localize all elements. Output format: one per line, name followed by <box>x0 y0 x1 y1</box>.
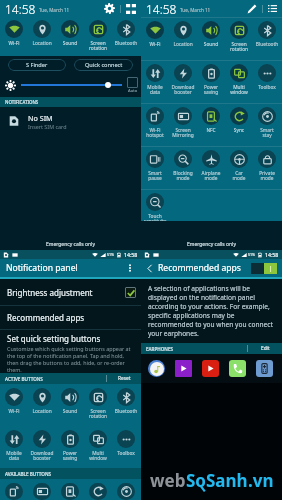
button[interactable]: Smart pause <box>141 147 169 189</box>
staticText: Auto <box>128 88 138 94</box>
staticText: 14:58 <box>146 1 177 17</box>
staticText: Screen rotation <box>84 408 112 419</box>
button[interactable]: Mobile data <box>0 426 28 468</box>
button[interactable]: Enable recommended apps <box>251 263 277 274</box>
button[interactable]: Video player <box>175 360 192 377</box>
staticText: NOTIFICATIONS <box>5 99 39 105</box>
button[interactable]: Multi window <box>225 61 253 103</box>
button[interactable] <box>28 479 56 500</box>
button[interactable]: Reset <box>107 373 141 384</box>
staticText: 51% <box>107 252 115 257</box>
button[interactable]: No SIM <box>0 107 141 135</box>
staticText: 14:58 <box>124 251 138 258</box>
button[interactable]: Power saving <box>197 61 225 103</box>
button[interactable]: Location <box>169 18 197 60</box>
staticText: 51% <box>248 252 256 257</box>
staticText: ACTIVE BUTTONS <box>5 376 43 382</box>
staticText: Download booster <box>28 450 56 461</box>
button[interactable]: YouTube <box>202 360 219 377</box>
button[interactable]: Download booster <box>169 61 197 103</box>
staticText: Multi window <box>225 84 253 95</box>
staticText: Sound <box>56 408 84 415</box>
button[interactable]: Remote <box>256 360 273 377</box>
button[interactable]: Car mode <box>225 147 253 189</box>
button[interactable]: Set quick setting buttons <box>0 330 141 373</box>
button[interactable]: Location <box>28 17 56 56</box>
staticText: Notification panel <box>6 262 78 274</box>
button[interactable]: Bluetooth <box>253 18 281 60</box>
button[interactable]: Toolbox <box>112 426 140 468</box>
staticText: web <box>150 469 186 492</box>
button[interactable]: Edit quick settings <box>247 4 257 14</box>
button[interactable]: Phone <box>229 360 246 377</box>
button[interactable]: More options <box>125 263 135 273</box>
staticText: Quick connect <box>85 61 123 69</box>
staticText: Blocking mode <box>169 170 197 181</box>
staticText: Location <box>28 40 56 47</box>
button[interactable] <box>84 479 112 500</box>
button[interactable]: Wi-Fi <box>0 17 28 56</box>
button[interactable]: Wi-Fi <box>141 18 169 60</box>
button[interactable]: Sound <box>56 17 84 56</box>
staticText: Screen rotation <box>225 41 253 52</box>
button[interactable]: Auto brightness <box>127 77 138 94</box>
button[interactable]: Bluetooth <box>112 384 140 426</box>
staticText: Recommended apps <box>158 262 241 274</box>
staticText: Sync <box>225 127 253 134</box>
button[interactable]: Screen rotation <box>84 17 112 56</box>
staticText: Bluetooth <box>112 408 140 415</box>
staticText: Sound <box>56 40 84 47</box>
staticText: So <box>186 469 206 492</box>
button[interactable]: Brightness adjustment <box>0 279 141 305</box>
button[interactable]: Recommended apps <box>0 306 141 329</box>
button[interactable]: Screen rotation <box>225 18 253 60</box>
button[interactable]: Power saving <box>56 426 84 468</box>
staticText: Recommended apps <box>7 312 85 323</box>
staticText: Wi-Fi <box>141 41 169 48</box>
staticText: EARPHONES <box>146 346 173 352</box>
button[interactable]: Edit <box>248 343 282 354</box>
button[interactable]: Expand quick settings <box>126 4 136 14</box>
staticText: S Finder <box>26 61 48 69</box>
button[interactable]: Touch sensitivity <box>141 190 169 221</box>
staticText: Toolbox <box>112 450 140 457</box>
button[interactable]: Wi-Fi <box>0 384 28 426</box>
button[interactable]: Quick connect <box>74 59 133 71</box>
button[interactable]: Sound <box>197 18 225 60</box>
staticText: Private mode <box>253 170 281 181</box>
button[interactable]: Mobile data <box>141 61 169 103</box>
button[interactable]: Private mode <box>253 147 281 189</box>
staticText: NFC <box>197 127 225 134</box>
staticText: Bluetooth <box>253 41 281 48</box>
button[interactable]: Blocking mode <box>169 147 197 189</box>
button[interactable]: Airplane mode <box>197 147 225 189</box>
button[interactable]: NFC <box>197 104 225 146</box>
button[interactable]: S Finder <box>8 59 66 71</box>
staticText: .vn <box>248 469 274 492</box>
staticText: Sound <box>197 41 225 48</box>
staticText: Tue, March 11 <box>39 7 70 13</box>
button[interactable] <box>0 479 28 500</box>
button[interactable]: Smart stay <box>253 104 281 146</box>
staticText: Location <box>28 408 56 415</box>
button[interactable]: Download booster <box>28 426 56 468</box>
button[interactable]: Sync <box>225 104 253 146</box>
button[interactable]: Location <box>28 384 56 426</box>
button[interactable]: Bluetooth <box>112 17 140 56</box>
button[interactable]: Show notifications <box>268 4 277 13</box>
staticText: Brightness adjustment <box>7 287 93 298</box>
button[interactable] <box>112 479 140 500</box>
button[interactable]: Sound <box>56 384 84 426</box>
button[interactable]: Toolbox <box>253 61 281 103</box>
button[interactable]: Navigate up <box>145 264 154 273</box>
button[interactable]: Music player <box>148 360 165 377</box>
button[interactable]: Screen rotation <box>84 384 112 426</box>
staticText: Insert SIM card <box>28 123 67 130</box>
button[interactable]: Multi window <box>84 426 112 468</box>
button[interactable]: Wi-Fi hotspot <box>141 104 169 146</box>
staticText: A selection of applications will be disp… <box>148 284 277 338</box>
button[interactable]: Settings <box>104 3 115 14</box>
staticText: Location <box>169 41 197 48</box>
button[interactable]: Screen Mirroring <box>169 104 197 146</box>
button[interactable] <box>56 479 84 500</box>
